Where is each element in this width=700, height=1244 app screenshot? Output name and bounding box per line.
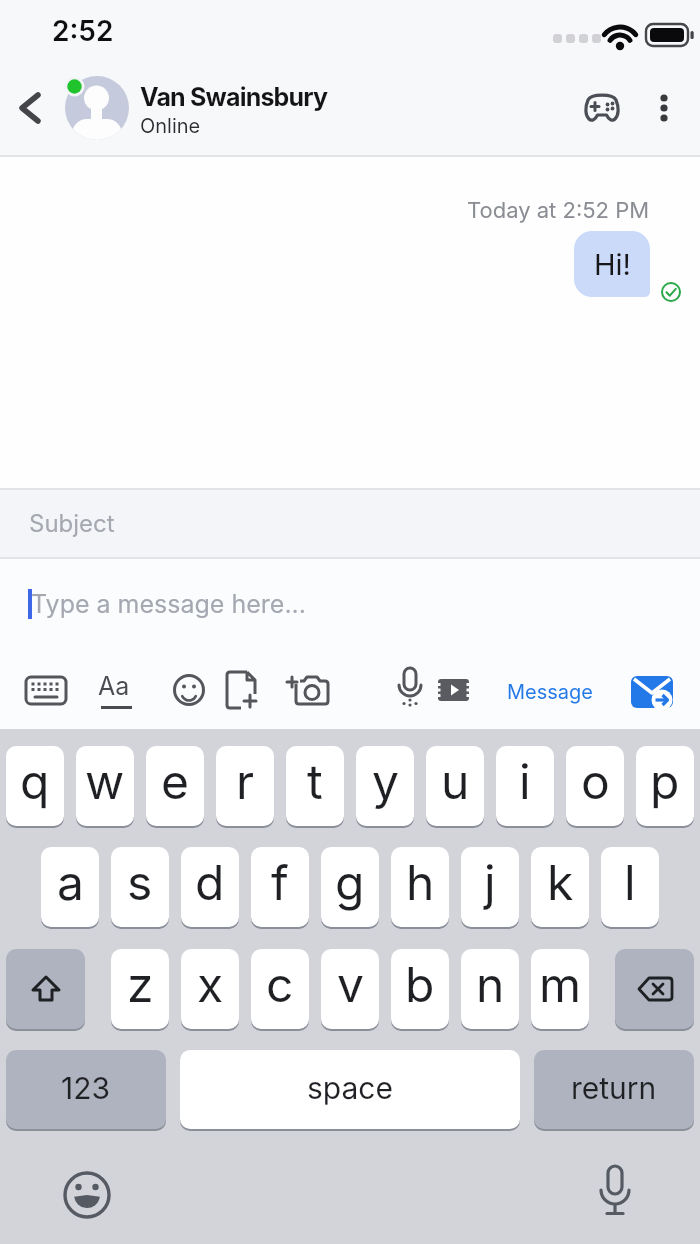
staticText: d [195,853,225,911]
button[interactable] [6,949,85,1029]
staticText: c [266,955,294,1013]
staticText: Subject [29,509,115,538]
button[interactable]: b [391,949,449,1029]
staticText: u [441,752,470,810]
button[interactable]: y [356,746,414,826]
staticText: 123 [61,1070,111,1106]
button[interactable] [627,666,677,716]
button[interactable]: k [531,847,589,927]
staticText: m [539,955,582,1013]
staticText: Type a message here... [31,589,306,619]
staticText: space [307,1070,393,1106]
staticText: Today at 2:52 PM [467,197,650,224]
button[interactable]: c [251,949,309,1029]
button[interactable] [165,666,213,714]
staticText: h [406,853,435,911]
staticText: q [20,752,50,810]
button[interactable] [0,559,700,729]
staticText: r [236,752,255,810]
button[interactable]: t [286,746,344,826]
button[interactable]: 123 [6,1050,166,1129]
staticText: x [197,955,224,1013]
staticText: e [161,752,189,810]
staticText: i [519,752,531,810]
button[interactable] [284,666,332,714]
staticText: return [571,1070,657,1106]
button[interactable]: s [111,847,169,927]
button[interactable]: m [531,949,589,1029]
button[interactable] [217,666,265,714]
button[interactable] [60,1168,114,1222]
button[interactable] [582,88,622,128]
button[interactable]: Aa [94,668,142,716]
staticText: o [581,752,610,810]
button[interactable]: j [461,847,519,927]
button[interactable]: space [180,1050,520,1129]
button[interactable]: u [426,746,484,826]
staticText: b [405,955,435,1013]
staticText: j [484,853,496,911]
staticText: s [127,853,153,911]
staticText: Online [140,114,201,138]
button[interactable]: f [251,847,309,927]
button[interactable]: r [216,746,274,826]
staticText: z [127,955,154,1013]
button[interactable]: z [111,949,169,1029]
staticText: n [476,955,505,1013]
button[interactable] [644,84,688,128]
button[interactable] [22,666,70,714]
button[interactable] [615,949,694,1029]
staticText: Hi! [594,247,631,282]
button[interactable]: q [6,746,64,826]
staticText: y [372,752,399,810]
button[interactable]: a [41,847,99,927]
button[interactable] [430,666,478,714]
button[interactable]: n [461,949,519,1029]
staticText: v [337,955,364,1013]
button[interactable]: Message [500,668,600,716]
button[interactable]: return [534,1050,694,1129]
staticText: p [650,752,680,810]
staticText: Van Swainsbury [140,82,328,112]
staticText: g [335,853,365,911]
staticText: w [85,752,125,810]
button[interactable] [386,662,434,710]
button[interactable]: v [321,949,379,1029]
staticText: f [271,853,289,911]
button[interactable]: l [601,847,659,927]
button[interactable]: x [181,949,239,1029]
staticText: Aa [98,671,130,701]
button[interactable] [8,84,56,132]
button[interactable]: i [496,746,554,826]
button[interactable] [588,1164,642,1218]
button[interactable]: o [566,746,624,826]
staticText: 2:52 [52,14,114,48]
button[interactable]: d [181,847,239,927]
staticText: l [624,853,636,911]
staticText: t [307,752,323,810]
staticText: k [547,853,574,911]
staticText: a [57,853,84,911]
button[interactable]: e [146,746,204,826]
staticText: Message [507,680,593,704]
button[interactable]: h [391,847,449,927]
button[interactable]: w [76,746,134,826]
button[interactable]: p [636,746,694,826]
button[interactable] [0,489,700,557]
button[interactable]: g [321,847,379,927]
